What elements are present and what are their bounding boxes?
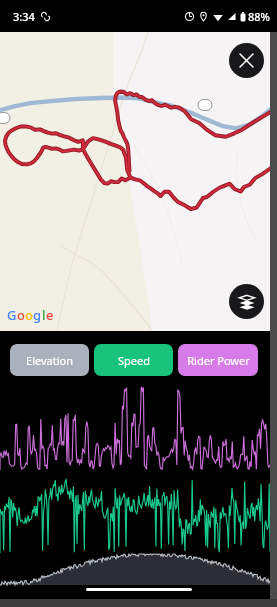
staticText: g	[33, 306, 42, 324]
staticText: l	[42, 306, 46, 324]
staticText: 88%	[248, 9, 270, 24]
button[interactable]: Map layers	[229, 284, 264, 319]
staticText: G	[7, 306, 17, 324]
staticText: e	[46, 306, 54, 324]
button[interactable]: Close	[229, 43, 264, 78]
staticText: 3:34	[13, 9, 35, 24]
button[interactable]: Rider Power	[178, 344, 258, 376]
staticText: o	[25, 306, 33, 324]
button[interactable]: Speed	[94, 344, 173, 376]
staticText: Rider Power	[187, 353, 250, 368]
staticText: o	[17, 306, 25, 324]
staticText: Speed	[118, 353, 150, 368]
button[interactable]: Elevation	[10, 344, 89, 376]
staticText: Elevation	[26, 353, 73, 368]
